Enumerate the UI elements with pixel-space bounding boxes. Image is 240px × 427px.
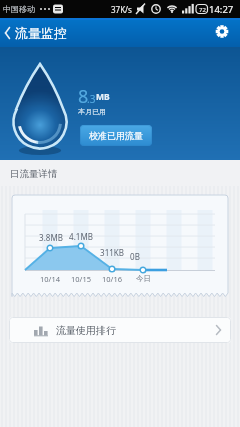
- button[interactable]: [0, 20, 16, 46]
- staticText: 8: [78, 84, 89, 109]
- staticText: 37K/s: [111, 4, 132, 15]
- staticText: 流量使用排行: [56, 324, 116, 337]
- button[interactable]: 流量使用排行: [9, 317, 231, 343]
- staticText: 10/15: [71, 274, 91, 284]
- staticText: 10/14: [40, 274, 60, 284]
- staticText: 日流量详情: [10, 168, 58, 180]
- staticText: 校准已用流量: [89, 130, 143, 141]
- staticText: 72: [199, 6, 206, 14]
- staticText: 流量监控: [15, 25, 67, 41]
- button[interactable]: 校准已用流量: [80, 125, 152, 146]
- staticText: 本月已用: [78, 107, 106, 116]
- staticText: 中国移动: [3, 4, 35, 14]
- button[interactable]: [211, 21, 233, 43]
- staticText: MB: [96, 91, 110, 103]
- staticText: .3: [87, 92, 96, 106]
- staticText: 今日: [136, 274, 151, 283]
- staticText: 14:27: [209, 3, 234, 16]
- staticText: 0B: [130, 251, 140, 262]
- staticText: 4.1MB: [69, 231, 93, 242]
- staticText: 3.8MB: [39, 232, 63, 243]
- staticText: 311KB: [100, 247, 124, 258]
- staticText: 10/16: [102, 274, 122, 284]
